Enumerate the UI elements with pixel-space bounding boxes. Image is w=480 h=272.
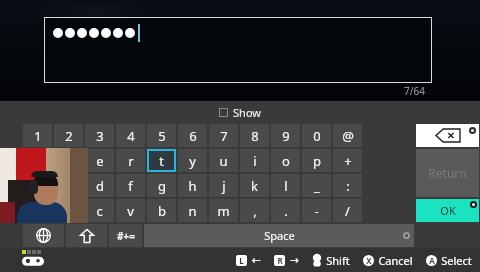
button[interactable]: 6 [178,124,207,147]
button[interactable]: L [236,254,261,267]
staticText: j [222,177,226,195]
staticText: e [96,152,104,170]
button[interactable]: t [147,149,176,172]
button[interactable]: Shift [66,224,107,247]
staticText: m [217,202,230,220]
button[interactable]: h [178,174,207,197]
button[interactable]: Show [215,103,265,122]
staticText: L [239,255,244,266]
button[interactable] [44,17,432,83]
button[interactable]: / [333,199,362,222]
button[interactable]: 9 [271,124,300,147]
staticText: 7 [220,127,228,145]
staticText: Select [441,253,472,268]
staticText: A [429,255,435,266]
button[interactable]: 3 [85,124,114,147]
staticText: x [65,202,72,220]
staticText: u [219,152,228,170]
button[interactable]: a [23,174,52,197]
button[interactable]: OK [416,199,479,222]
staticText: o [282,152,290,170]
staticText: y [189,152,196,170]
button[interactable]: Space [144,224,414,247]
staticText: w [63,152,74,170]
staticText: _ [314,177,320,195]
staticText: z [34,202,41,220]
button[interactable]: e [85,149,114,172]
staticText: Show [233,105,261,120]
staticText: a [34,177,42,195]
button[interactable]: f [116,174,145,197]
button[interactable]: v [116,199,145,222]
button[interactable]: o [271,149,300,172]
button[interactable]: R [274,254,299,267]
button[interactable]: j [209,174,238,197]
staticText: 1 [34,127,42,145]
staticText: 2 [65,127,73,145]
button[interactable]: g [147,174,176,197]
staticText: + [344,152,352,170]
button[interactable]: _ [302,174,331,197]
staticText: X [366,255,372,266]
button[interactable]: 0 [302,124,331,147]
button[interactable]: b [147,199,176,222]
button[interactable]: : [333,174,362,197]
staticText: 3 [96,127,104,145]
staticText: h [188,177,197,195]
button[interactable]: + [333,149,362,172]
button[interactable]: 5 [147,124,176,147]
button[interactable]: u [209,149,238,172]
staticText: → [289,254,299,267]
button[interactable]: r [116,149,145,172]
staticText: @ [342,127,354,145]
staticText: : [346,177,350,195]
staticText: p [313,152,321,170]
button[interactable]: Shift [312,253,350,268]
staticText: Shift [326,253,350,268]
button[interactable]: d [85,174,114,197]
button[interactable]: 7 [209,124,238,147]
button[interactable]: - [302,199,331,222]
button[interactable]: X [363,253,413,268]
staticText: / [345,202,350,220]
staticText: s [65,177,72,195]
button[interactable]: 2 [54,124,83,147]
button[interactable]: 8 [240,124,269,147]
staticText: Cancel [378,253,413,268]
button[interactable]: l [271,174,300,197]
staticText: Space [264,228,295,243]
staticText: r [128,152,134,170]
staticText: 8 [251,127,259,145]
staticText: c [96,202,103,220]
button[interactable]: c [85,199,114,222]
button[interactable]: p [302,149,331,172]
button[interactable]: A [426,253,472,268]
button[interactable]: , [240,199,269,222]
button[interactable]: @ [333,124,362,147]
button[interactable]: w [54,149,83,172]
button[interactable]: #+= [109,224,142,247]
staticText: i [253,152,257,170]
button[interactable]: z [23,199,52,222]
button[interactable]: . [271,199,300,222]
button[interactable]: k [240,174,269,197]
button[interactable]: Return [416,149,479,197]
button[interactable]: m [209,199,238,222]
button[interactable]: y [178,149,207,172]
button[interactable]: x [54,199,83,222]
staticText: #+= [117,229,135,243]
staticText: R [277,255,283,266]
staticText: f [128,177,133,195]
button[interactable]: Language [23,224,64,247]
button[interactable]: 1 [23,124,52,147]
button[interactable]: 4 [116,124,145,147]
button[interactable]: Backspace [416,124,479,147]
button[interactable]: q [23,149,52,172]
staticText: 4 [127,127,135,145]
button[interactable]: s [54,174,83,197]
button[interactable]: i [240,149,269,172]
button[interactable]: n [178,199,207,222]
staticText: - [314,202,319,220]
staticText: , [253,202,257,220]
